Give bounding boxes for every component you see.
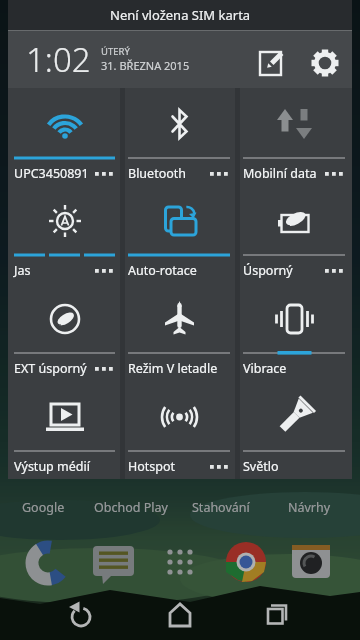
button[interactable]: Výstup médií — [8, 381, 122, 479]
staticText: 1:02 — [26, 37, 91, 82]
button[interactable] — [222, 538, 270, 586]
button[interactable] — [90, 538, 138, 586]
button[interactable]: Google — [0, 498, 88, 516]
staticText: Obchod Play — [94, 499, 168, 516]
staticText: Auto-rotace — [128, 262, 197, 279]
button[interactable]: Obchod Play — [86, 498, 176, 516]
button[interactable]: EXT úsporný — [8, 283, 122, 381]
button[interactable]: Úsporný — [237, 185, 352, 283]
button[interactable]: Světlo — [237, 381, 352, 479]
staticText: Výstup médií — [14, 458, 90, 475]
button[interactable]: Vibrace — [237, 283, 352, 381]
staticText: Stahování — [192, 499, 250, 516]
button[interactable]: Jas — [8, 185, 122, 283]
button[interactable]: Návrhy — [264, 498, 354, 516]
button[interactable] — [61, 596, 101, 636]
button[interactable] — [252, 43, 292, 83]
staticText: Jas — [14, 262, 31, 279]
button[interactable]: Režim V letadle — [122, 283, 237, 381]
button[interactable]: Hotspot — [122, 381, 237, 479]
staticText: Není vložena SIM karta — [110, 6, 251, 24]
staticText: EXT úsporný — [14, 360, 87, 377]
button[interactable] — [305, 43, 345, 83]
staticText: Google — [22, 499, 65, 516]
staticText: Úsporný — [243, 262, 293, 279]
staticText: Vibrace — [243, 360, 287, 377]
button[interactable]: UPC3450891 — [8, 88, 122, 185]
button[interactable] — [287, 538, 335, 586]
staticText: 31. BŘEZNA 2015 — [101, 58, 190, 73]
staticText: Bluetooth — [128, 165, 187, 182]
button[interactable] — [160, 596, 200, 636]
staticText: Světlo — [243, 458, 279, 475]
staticText: UPC3450891 — [14, 165, 89, 182]
button[interactable] — [21, 538, 69, 586]
button[interactable]: Mobilní data — [237, 88, 352, 185]
button[interactable] — [156, 538, 204, 586]
button[interactable]: Auto-rotace — [122, 185, 237, 283]
staticText: Hotspot — [128, 458, 176, 475]
staticText: Návrhy — [288, 499, 331, 516]
staticText: Mobilní data — [243, 165, 317, 182]
staticText: Režim V letadle — [128, 360, 218, 377]
button[interactable]: Bluetooth — [122, 88, 237, 185]
staticText: ÚTERÝ — [101, 45, 130, 58]
button[interactable]: Stahování — [176, 498, 266, 516]
button[interactable] — [257, 596, 297, 636]
